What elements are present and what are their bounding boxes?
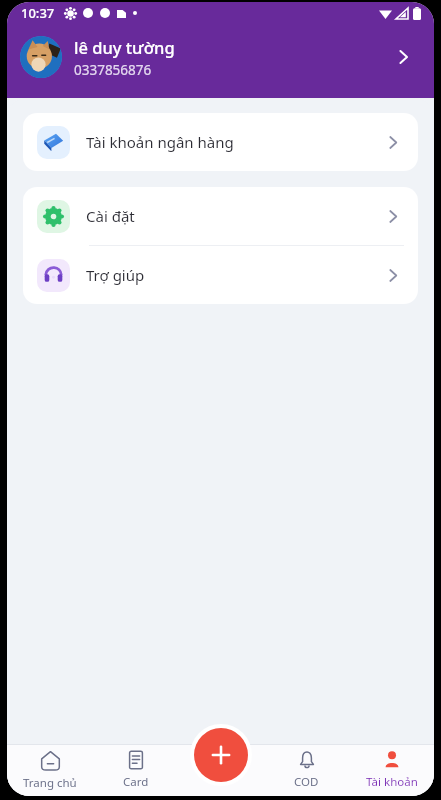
staticText: 10:37 xyxy=(21,4,55,22)
staticText: Tài khoản xyxy=(366,774,418,790)
button[interactable]: Tài khoản ngân hàng xyxy=(23,113,418,171)
button[interactable]: lê duy tường xyxy=(7,24,434,90)
staticText: 0337856876 xyxy=(74,61,152,79)
button[interactable]: Card xyxy=(93,744,179,796)
button[interactable]: Cài đặt xyxy=(23,187,418,245)
staticText: Trang chủ xyxy=(23,775,77,791)
staticText: COD xyxy=(294,774,319,790)
staticText: Tài khoản ngân hàng xyxy=(86,132,234,152)
staticText: Card xyxy=(123,774,149,790)
staticText: Trợ giúp xyxy=(86,265,145,285)
button[interactable]: Tài khoản xyxy=(349,744,434,796)
button[interactable]: Add xyxy=(194,728,248,782)
button[interactable]: COD xyxy=(264,744,349,796)
button[interactable]: Trợ giúp xyxy=(23,246,418,304)
staticText: Cài đặt xyxy=(86,206,135,226)
button[interactable]: Trang chủ xyxy=(7,744,93,796)
staticText: lê duy tường xyxy=(74,36,175,58)
button[interactable]: Profile details xyxy=(390,42,420,72)
